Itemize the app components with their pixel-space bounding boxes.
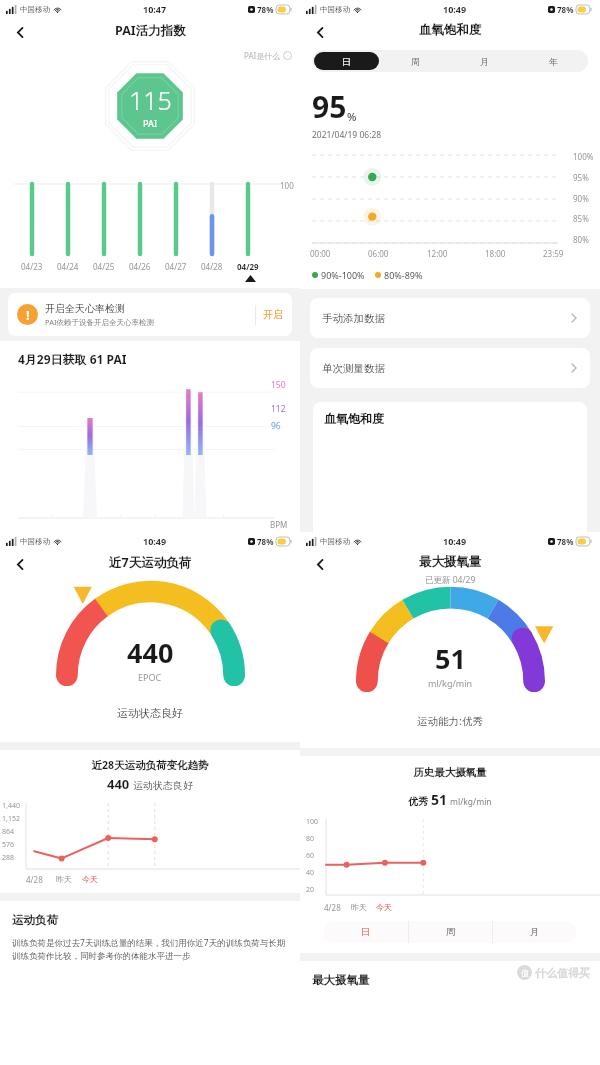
button[interactable]: 日	[324, 921, 408, 943]
staticText: 60	[306, 851, 315, 861]
button[interactable]: 单次测量数据	[310, 348, 590, 388]
staticText: 78%	[257, 536, 274, 547]
staticText: 血氧饱和度	[419, 22, 482, 38]
staticText: BPM	[270, 519, 288, 530]
staticText: 04/29	[237, 261, 259, 272]
staticText: 中国移动	[320, 537, 350, 546]
staticText: 月	[530, 926, 540, 938]
staticText: 近28天运动负荷变化趋势	[0, 758, 300, 772]
button[interactable]: !	[8, 293, 292, 336]
staticText: 日	[342, 56, 351, 67]
button[interactable]: Back	[308, 20, 332, 44]
staticText: 4/28	[324, 902, 341, 913]
button[interactable]: 月	[452, 52, 517, 70]
staticText: 周	[446, 926, 456, 938]
staticText: 值	[521, 968, 529, 978]
button[interactable]: 年	[521, 52, 586, 70]
staticText: 历史最大摄氧量	[300, 766, 600, 779]
staticText: 04/25	[93, 261, 115, 272]
staticText: 112	[271, 403, 286, 415]
staticText: 04/28	[201, 261, 223, 272]
staticText: 10:49	[443, 3, 467, 15]
staticText: 95	[312, 86, 347, 127]
staticText: PAI活力指数	[115, 22, 186, 39]
staticText: 2021/04/19 06:28	[312, 129, 382, 141]
staticText: 04/23	[21, 261, 43, 272]
staticText: PAI依赖于设备开启全天心率检测	[45, 317, 154, 327]
staticText: 近7天运动负荷	[109, 554, 192, 571]
button[interactable]: 日	[314, 52, 379, 70]
staticText: 血氧饱和度	[324, 411, 384, 426]
staticText: 10:49	[443, 535, 467, 547]
staticText: 开启	[263, 308, 283, 321]
staticText: 150	[271, 379, 286, 391]
staticText: 月	[480, 56, 489, 67]
staticText: 90%-100%	[321, 269, 365, 281]
staticText: 10:47	[143, 3, 167, 15]
staticText: 80%-89%	[384, 269, 423, 281]
staticText: 95%	[573, 172, 589, 183]
staticText: 年	[549, 56, 558, 67]
staticText: 20	[306, 885, 315, 895]
staticText: 90%	[573, 193, 589, 204]
staticText: 78%	[257, 4, 274, 15]
button[interactable]: Back	[308, 552, 332, 576]
staticText: 今天	[376, 902, 392, 912]
staticText: 什么值得买	[535, 966, 590, 980]
staticText: 最大摄氧量	[312, 973, 370, 987]
button[interactable]: PAI是什么	[244, 50, 292, 61]
staticText: !	[26, 306, 30, 324]
staticText: 昨天	[56, 874, 72, 884]
staticText: ml/kg/min	[450, 796, 492, 808]
staticText: 运动状态良好	[133, 779, 193, 792]
staticText: 85%	[573, 213, 589, 224]
staticText: 今天	[82, 874, 98, 884]
staticText: 288	[2, 853, 15, 863]
staticText: 运动能力:优秀	[300, 714, 600, 728]
staticText: 00:00	[310, 248, 331, 259]
button[interactable]: Back	[8, 552, 32, 576]
staticText: 1,440	[2, 801, 20, 811]
button[interactable]: 手动添加数据	[310, 298, 590, 338]
staticText: 18:00	[485, 248, 506, 259]
staticText: 开启全天心率检测	[45, 302, 125, 315]
staticText: 已更新 04/29	[425, 574, 476, 586]
button[interactable]: 月	[493, 921, 576, 943]
staticText: 04/26	[129, 261, 151, 272]
button[interactable]: 周	[409, 921, 492, 943]
staticText: 1,152	[2, 814, 20, 824]
staticText: 115	[129, 83, 172, 117]
staticText: ml/kg/min	[428, 677, 473, 689]
staticText: 单次测量数据	[322, 362, 570, 375]
staticText: 运动负荷	[12, 913, 58, 927]
staticText: 78%	[557, 536, 574, 547]
button[interactable]: Back	[8, 20, 32, 44]
staticText: PAI是什么	[244, 50, 281, 61]
staticText: 日	[361, 926, 371, 938]
staticText: 440	[127, 634, 174, 671]
staticText: 中国移动	[320, 5, 350, 14]
staticText: 100%	[573, 151, 594, 162]
staticText: 100	[306, 817, 319, 827]
staticText: 51	[435, 640, 466, 677]
staticText: 23:59	[543, 248, 564, 259]
staticText: 12:00	[427, 248, 448, 259]
staticText: 最大摄氧量	[419, 554, 482, 570]
staticText: EPOC	[138, 671, 162, 683]
staticText: 96	[271, 420, 281, 432]
staticText: 手动添加数据	[322, 312, 570, 325]
staticText: 训练负荷是你过去7天训练总量的结果，我们用你近7天的训练负荷与长期训练负荷作比较…	[12, 937, 288, 961]
button[interactable]: 周	[383, 52, 448, 70]
staticText: 优秀	[408, 795, 428, 808]
staticText: 78%	[557, 4, 574, 15]
staticText: 昨天	[351, 902, 367, 912]
staticText: %	[347, 109, 357, 124]
staticText: 中国移动	[20, 537, 50, 546]
staticText: 中国移动	[20, 5, 50, 14]
staticText: 80	[306, 834, 315, 844]
staticText: 10:49	[143, 535, 167, 547]
staticText: 运动状态良好	[0, 706, 300, 720]
staticText: 06:00	[368, 248, 389, 259]
staticText: 4/28	[26, 874, 43, 885]
staticText: 864	[2, 827, 15, 837]
